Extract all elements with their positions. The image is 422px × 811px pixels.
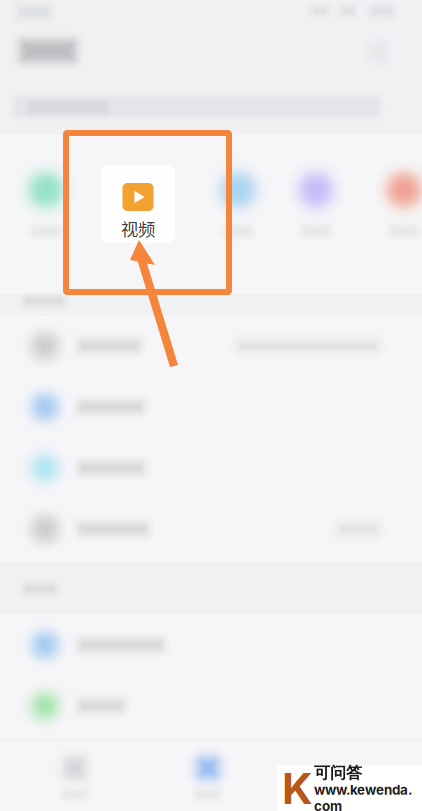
button[interactable]: Tab <box>22 742 128 811</box>
button[interactable]: Shortcut <box>278 146 354 246</box>
staticText: 视频 <box>121 216 155 241</box>
button[interactable]: Tab <box>155 742 261 811</box>
staticText: www.kewenda.com <box>314 782 412 811</box>
button[interactable]: Shortcut <box>200 146 276 246</box>
button[interactable] <box>0 676 422 737</box>
button[interactable] <box>0 499 422 560</box>
button[interactable] <box>0 377 422 438</box>
button[interactable] <box>0 316 422 377</box>
button[interactable] <box>0 438 422 499</box>
button[interactable]: Shortcut <box>8 146 84 246</box>
button[interactable]: Shortcut <box>366 146 422 246</box>
staticText: 可问答 <box>314 763 362 783</box>
staticText: K <box>282 763 313 811</box>
button[interactable]: Search <box>0 87 422 127</box>
button[interactable]: 视频 <box>101 165 175 243</box>
button[interactable] <box>0 615 422 676</box>
